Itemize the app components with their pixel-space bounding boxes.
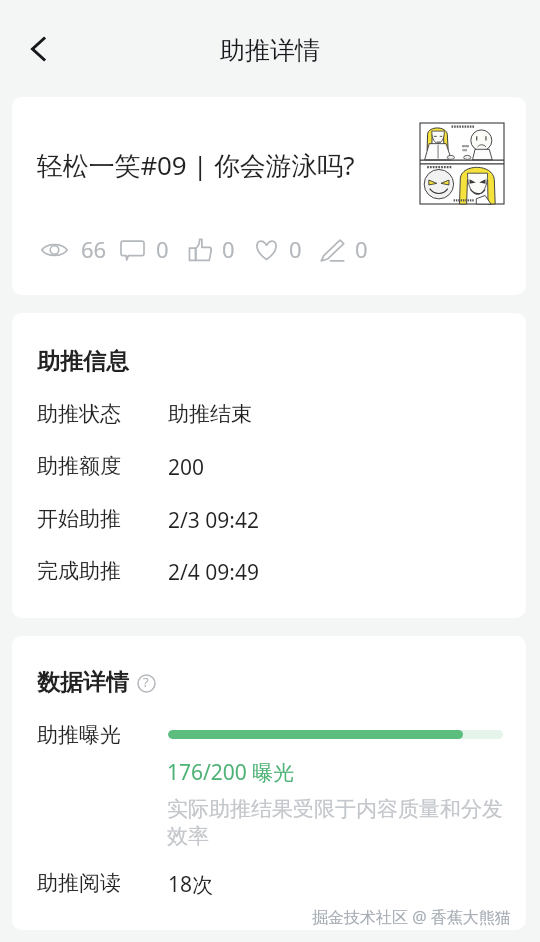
staticText: 助推额度 [37, 453, 168, 479]
button[interactable]: Back [14, 25, 62, 73]
staticText: 助推详情 [220, 35, 320, 66]
staticText: 助推状态 [37, 401, 168, 427]
staticText: 轻松一笑#09 | 你会游泳吗? [37, 147, 397, 183]
button[interactable]: 0 [254, 235, 302, 265]
staticText: 助推阅读 [37, 870, 168, 896]
staticText: 0 [355, 234, 368, 264]
button[interactable]: 0 [189, 235, 235, 265]
staticText: 助推结束 [168, 401, 252, 427]
staticText: 掘金技术社区 @ 香蕉大熊猫 [312, 906, 511, 928]
staticText: 数据详情 [37, 668, 129, 697]
staticText: ? [143, 673, 149, 691]
staticText: 助推曝光 [37, 722, 121, 748]
staticText: 0 [222, 234, 235, 264]
staticText: 18次 [168, 870, 214, 899]
staticText: 200 [168, 453, 205, 482]
staticText: 0 [289, 234, 302, 264]
staticText: 助推信息 [37, 347, 129, 376]
button[interactable]: 0 [121, 235, 169, 265]
button[interactable]: Help [136, 673, 156, 693]
staticText: 完成助推 [37, 558, 168, 584]
staticText: 176/200 曝光 [167, 758, 295, 787]
staticText: 实际助推结果受限于内容质量和分发效率 [167, 796, 512, 849]
button[interactable]: 轻松一笑#09 | 你会游泳吗? [12, 97, 526, 222]
button[interactable]: 0 [320, 235, 368, 265]
button[interactable]: 66 [41, 235, 107, 265]
staticText: 开始助推 [37, 506, 168, 532]
staticText: 0 [156, 234, 169, 264]
staticText: 2/3 09:42 [168, 506, 259, 535]
staticText: 66 [81, 234, 107, 264]
staticText: 2/4 09:49 [168, 558, 259, 587]
